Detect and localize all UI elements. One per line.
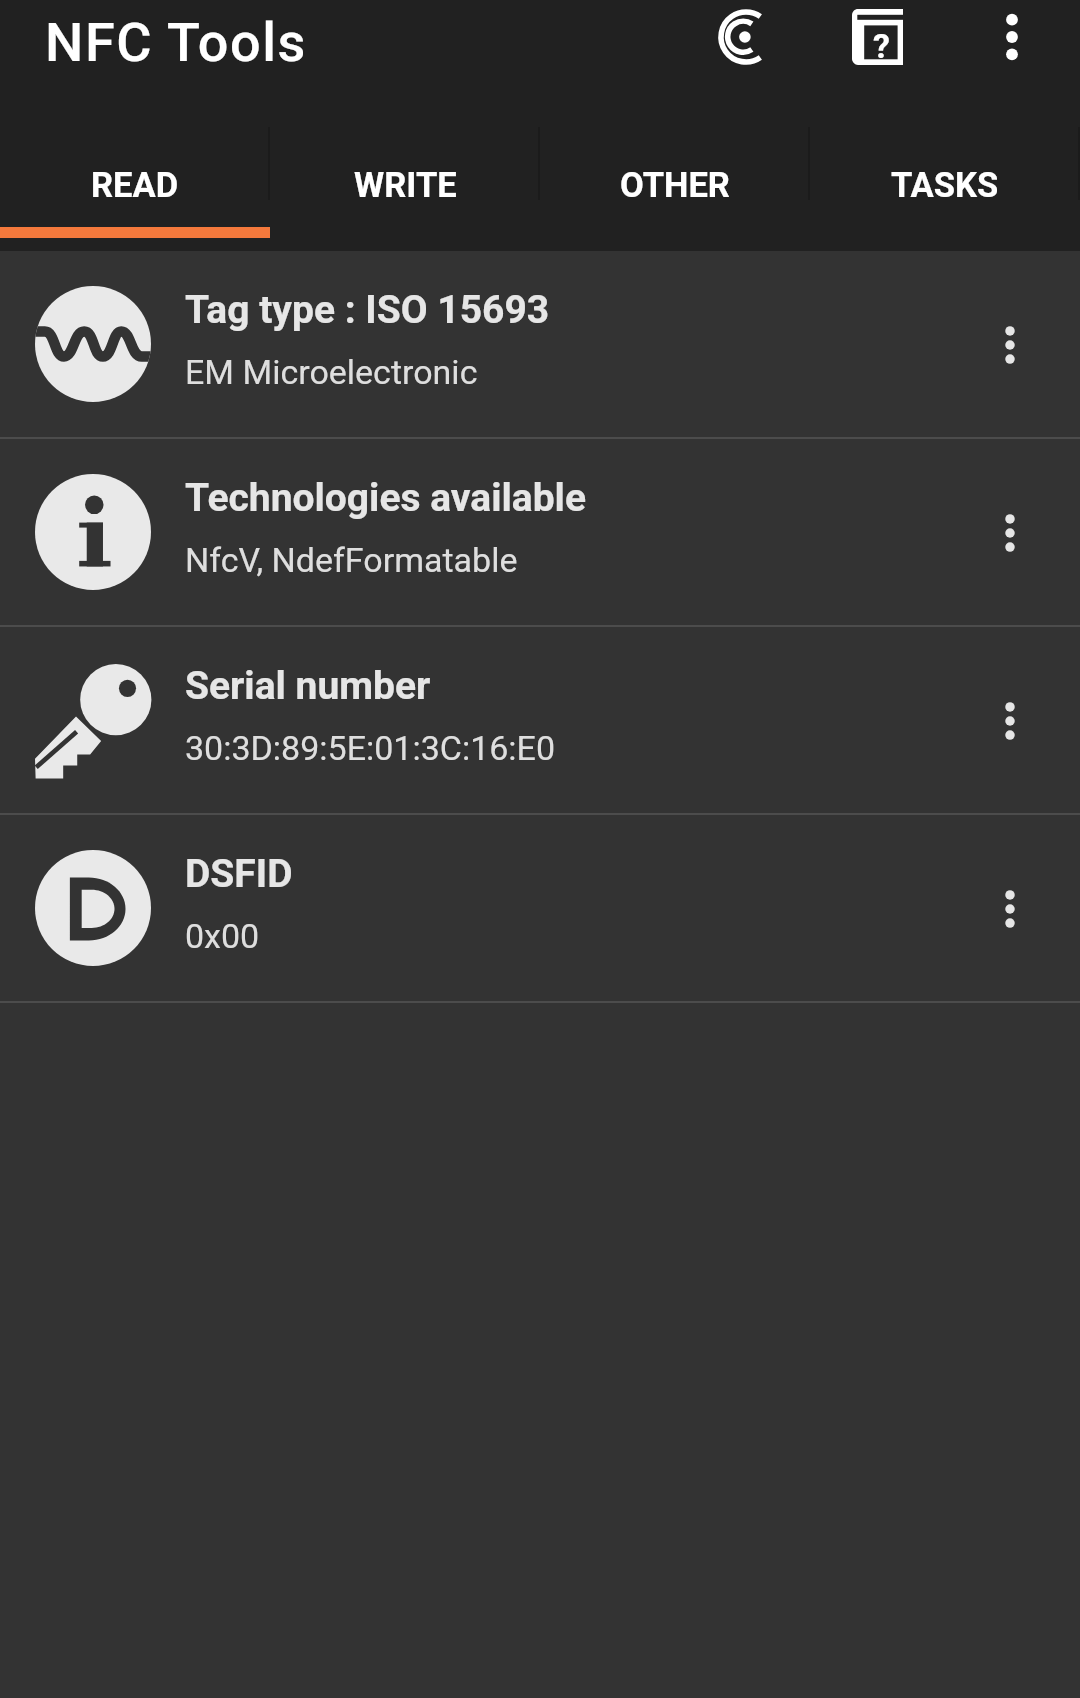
staticText: WRITE [354, 165, 457, 205]
button[interactable]: NFC settings [676, 0, 816, 84]
button[interactable]: TASKS [810, 84, 1080, 251]
staticText: NFC Tools [45, 11, 307, 74]
button[interactable]: More options [974, 439, 1080, 625]
staticText: DSFID [185, 851, 293, 897]
button[interactable]: READ [0, 84, 270, 251]
staticText: Technologies available [185, 475, 586, 521]
button[interactable]: Technologies available [0, 439, 1080, 625]
button[interactable]: Serial number [0, 627, 1080, 813]
button[interactable]: WRITE [270, 84, 540, 251]
button[interactable]: More options [944, 0, 1080, 84]
button[interactable]: More options [974, 815, 1080, 1001]
button[interactable]: More options [974, 627, 1080, 813]
staticText: ? [873, 26, 890, 66]
button[interactable]: More options [974, 251, 1080, 437]
staticText: EM Microelectronic [185, 352, 478, 392]
button[interactable]: Tag type : ISO 15693 [0, 251, 1080, 437]
staticText: OTHER [620, 165, 730, 205]
staticText: 30:3D:89:5E:01:3C:16:E0 [185, 728, 556, 768]
staticText: NfcV, NdefFormatable [185, 540, 518, 580]
staticText: 0x00 [185, 916, 260, 956]
staticText: READ [91, 165, 179, 205]
button[interactable]: Help [816, 0, 944, 84]
button[interactable]: OTHER [540, 84, 810, 251]
staticText: TASKS [891, 165, 999, 205]
staticText: Serial number [185, 663, 431, 709]
button[interactable]: DSFID [0, 815, 1080, 1001]
staticText: Tag type : ISO 15693 [185, 287, 550, 333]
